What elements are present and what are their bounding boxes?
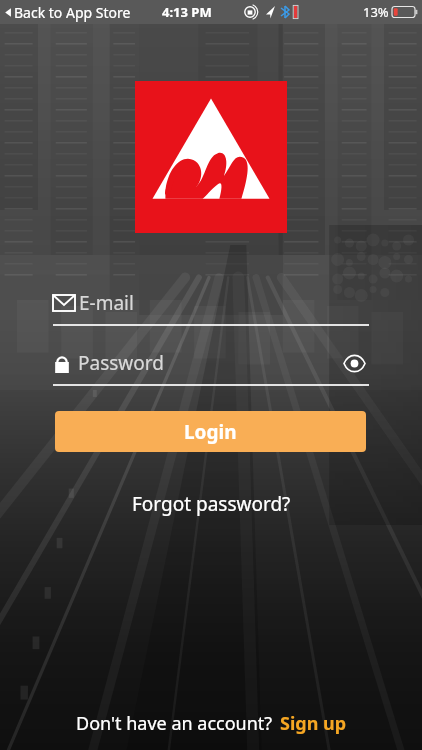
staticText: Forgot password? bbox=[132, 491, 291, 517]
staticText: Sign up bbox=[280, 711, 347, 736]
staticText: Login bbox=[184, 419, 237, 445]
staticText: Don't have an account? bbox=[76, 711, 273, 736]
staticText: 13% bbox=[363, 3, 389, 21]
button[interactable]: Password bbox=[53, 348, 369, 386]
staticText: E-mail bbox=[79, 290, 134, 316]
staticText: Back to App Store bbox=[14, 3, 131, 22]
button[interactable]: Back to App Store bbox=[3, 3, 131, 22]
staticText: 4:13 PM bbox=[162, 3, 212, 21]
staticText: Password bbox=[78, 350, 164, 376]
button[interactable]: Forgot password? bbox=[122, 487, 301, 521]
button[interactable]: Sign up bbox=[280, 711, 347, 736]
button[interactable]: Login bbox=[55, 411, 366, 452]
button[interactable]: E-mail bbox=[53, 290, 369, 326]
button[interactable]: Show password bbox=[339, 348, 369, 378]
